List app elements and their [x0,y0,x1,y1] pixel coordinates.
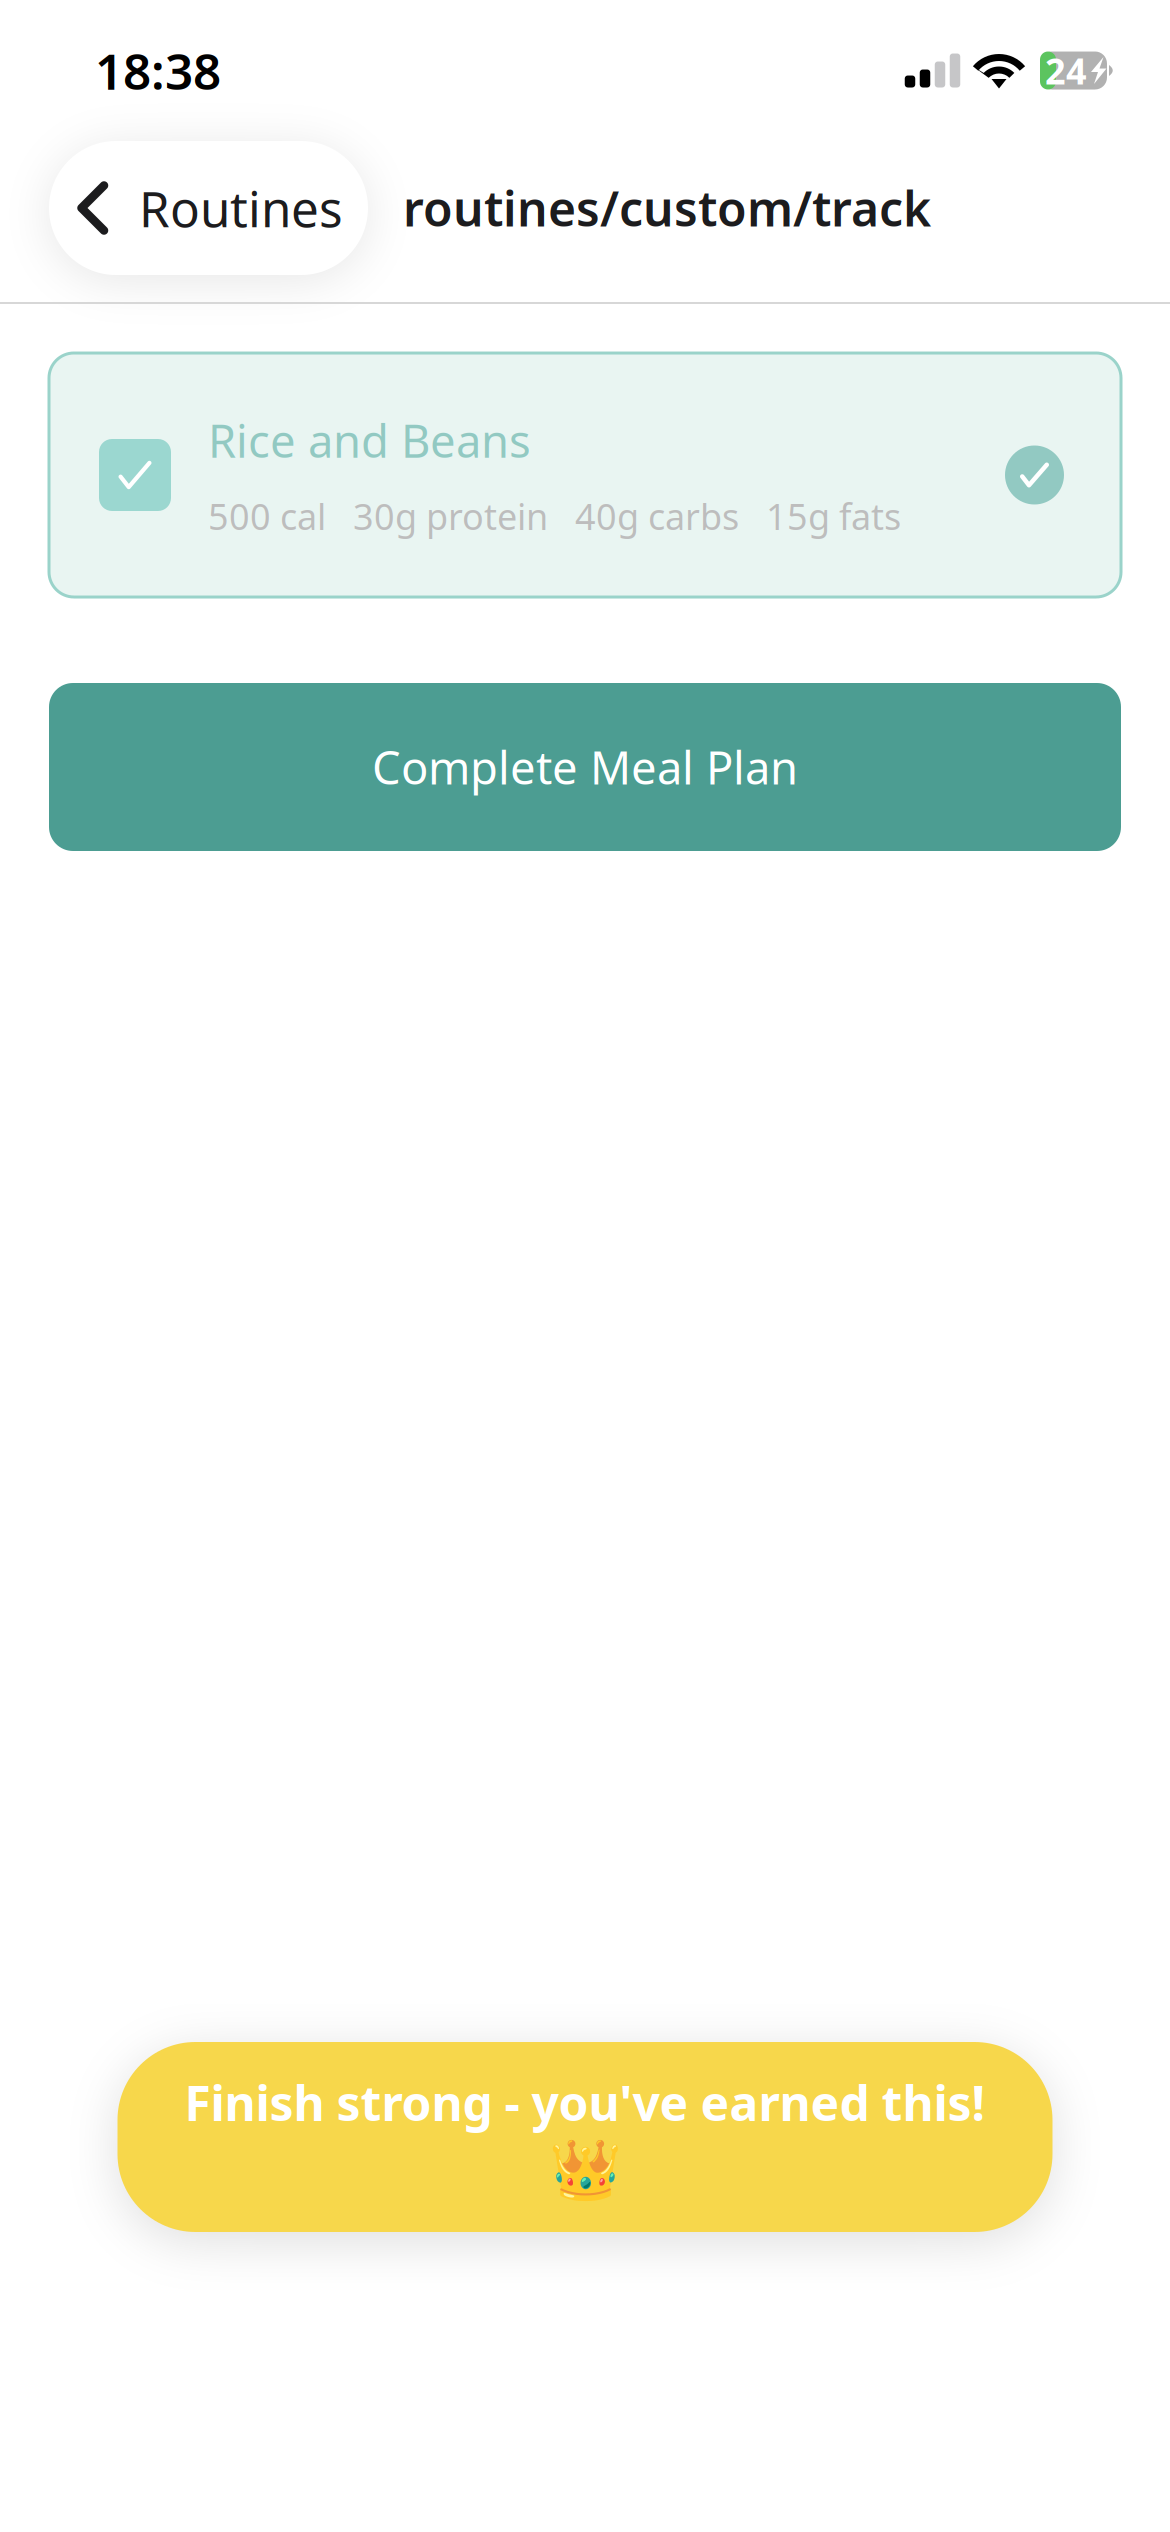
button[interactable]: Rice and Beans [49,353,1121,597]
staticText: Rice and Beans [208,410,531,470]
button[interactable]: Routines [49,141,368,275]
staticText: Routines [139,175,343,241]
staticText: routines/custom/track [403,176,931,240]
button[interactable]: Complete Meal Plan [49,683,1121,851]
staticText: 24 [1045,47,1087,94]
staticText: Finish strong - you've earned this! [184,2071,985,2134]
staticText: Complete Meal Plan [372,737,798,797]
staticText: 👑 [548,2136,621,2203]
staticText: 18:38 [95,38,221,103]
staticText: 500 cal 30g protein 40g carbs 15g fats [208,492,901,540]
